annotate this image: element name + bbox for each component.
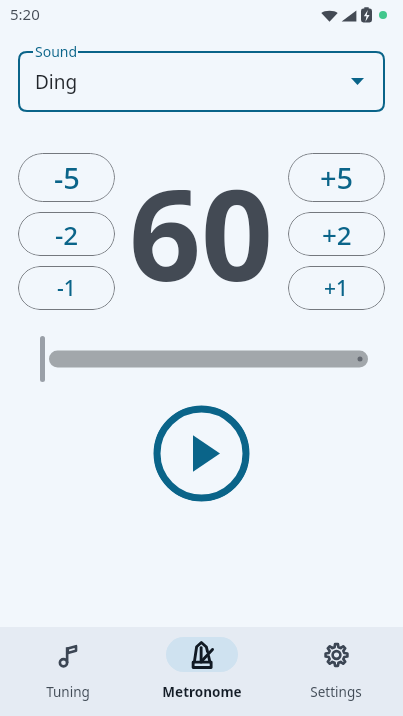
staticText: -5 (54, 158, 80, 197)
staticText: Settings (310, 683, 362, 701)
button[interactable]: Settings (269, 634, 403, 709)
other: Open sound list (351, 78, 364, 85)
button[interactable]: Sound (18, 51, 385, 112)
staticText: -1 (57, 274, 76, 303)
staticText: 5:20 (10, 4, 40, 24)
staticText: Metronome (162, 683, 242, 701)
button[interactable]: -2 (18, 212, 115, 256)
staticText: +1 (324, 274, 349, 303)
button[interactable]: Tempo slider (0, 333, 403, 385)
staticText: 60 (129, 146, 274, 311)
button[interactable]: Metronome (135, 634, 269, 709)
button[interactable]: +1 (288, 266, 385, 310)
staticText: -2 (55, 217, 79, 252)
staticText: Sound (35, 42, 78, 61)
button[interactable]: -1 (18, 266, 115, 310)
button[interactable]: +5 (288, 153, 385, 202)
button[interactable]: +2 (288, 212, 385, 256)
staticText: Ding (35, 69, 78, 95)
staticText: +2 (322, 217, 352, 252)
button[interactable]: -5 (18, 153, 115, 202)
button[interactable]: Play (153, 405, 250, 502)
staticText: +5 (320, 158, 354, 197)
button[interactable]: Tuning (0, 634, 135, 709)
staticText: Tuning (46, 683, 90, 701)
